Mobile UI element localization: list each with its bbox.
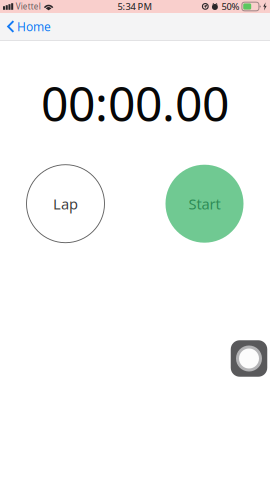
button[interactable]: Start [165,165,243,243]
button[interactable]: Lap [26,165,104,243]
button[interactable]: Home [0,13,61,40]
staticText: 50% [221,0,239,13]
staticText: 5:34 PM [117,0,152,13]
staticText: 00:00.00 [41,71,229,135]
button[interactable]: AssistiveTouch [231,340,267,377]
staticText: Viettel [16,1,41,12]
staticText: Start [188,194,220,213]
staticText: Lap [53,194,78,213]
staticText: Home [17,18,51,34]
